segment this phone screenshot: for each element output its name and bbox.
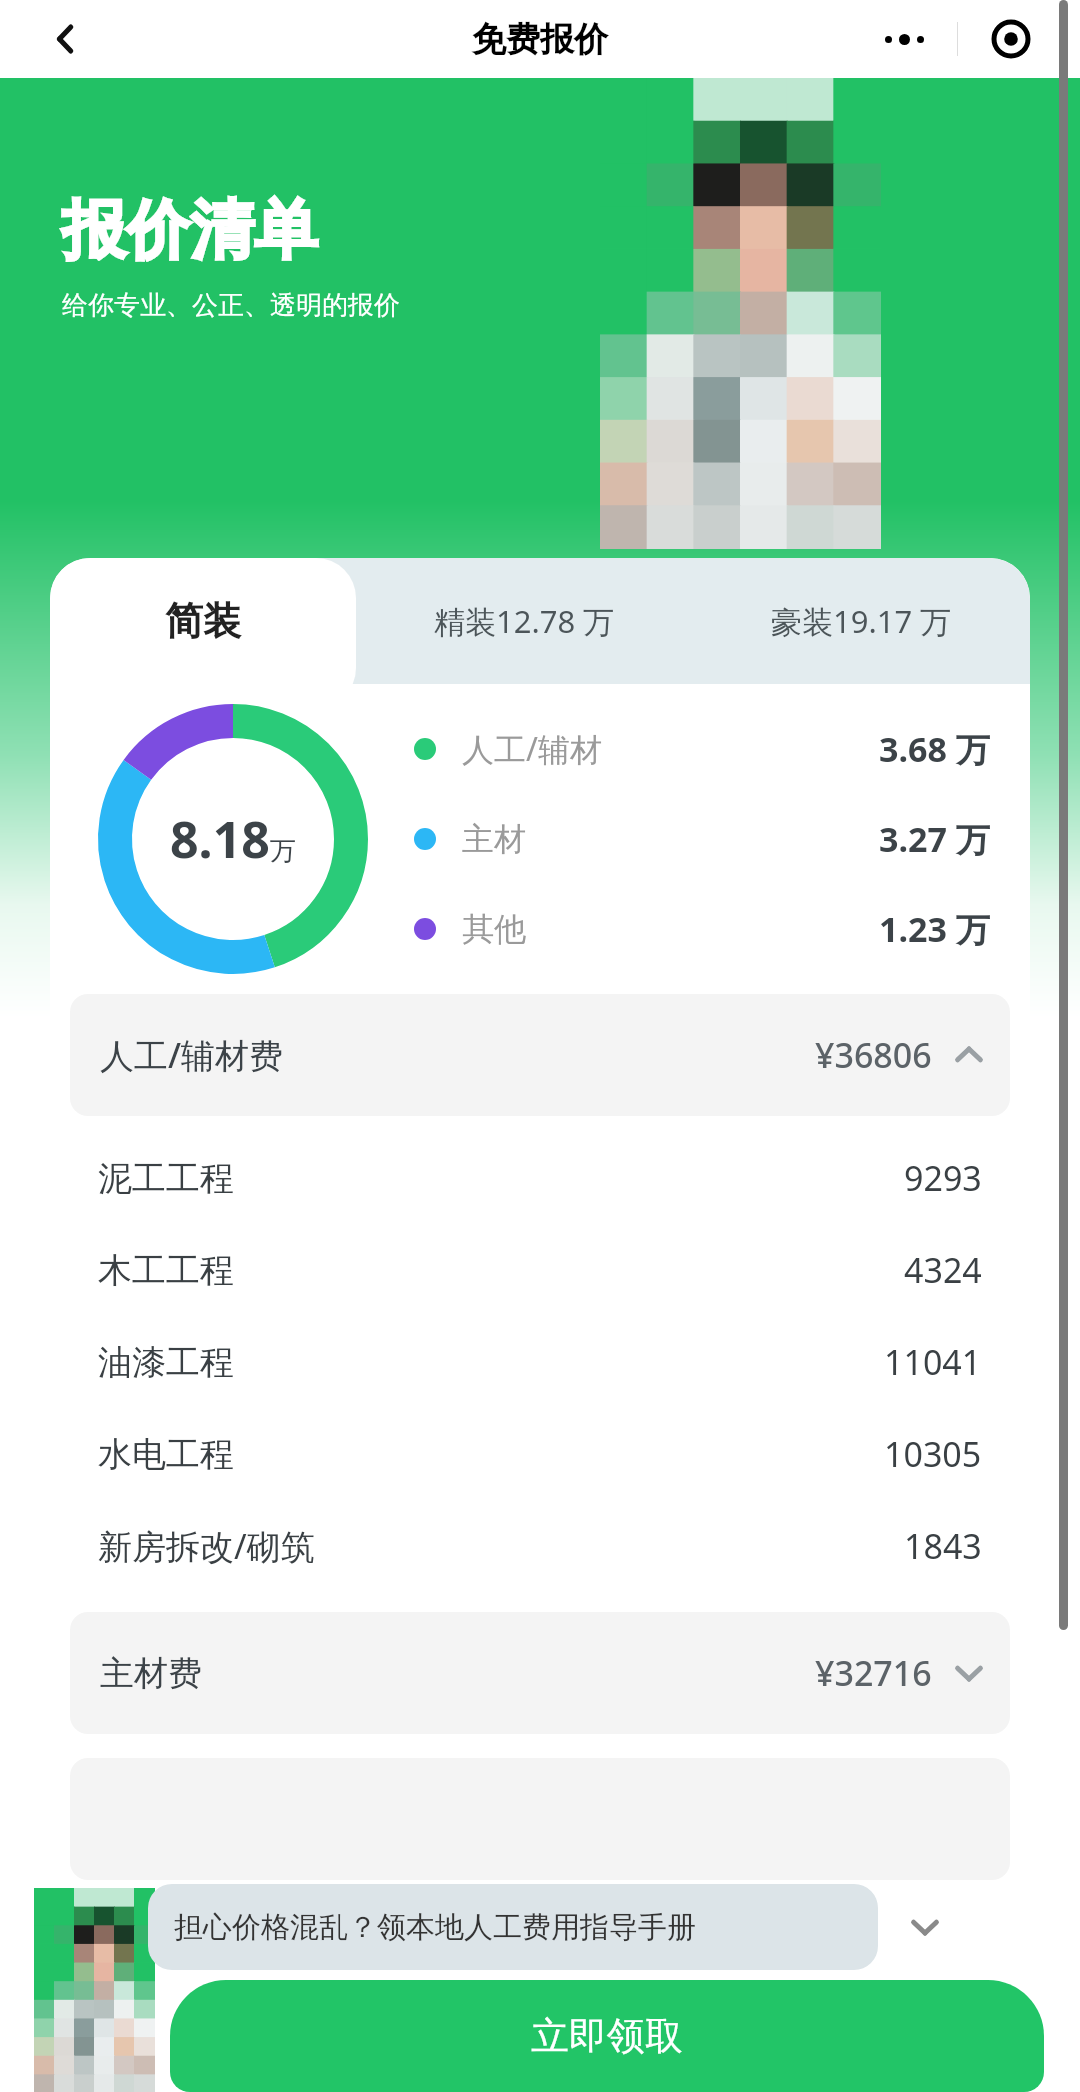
button[interactable]: Back (40, 13, 92, 65)
staticText: 4324 (904, 1247, 982, 1293)
staticText: 油漆工程 (98, 1341, 234, 1384)
button[interactable]: 精装12.78 万 (356, 558, 693, 684)
button[interactable]: 新房拆改/砌筑 (98, 1500, 982, 1592)
button[interactable]: 担心价格混乱？领本地人工费用指导手册 (148, 1884, 878, 1970)
button[interactable]: 立即领取 (170, 1980, 1044, 2092)
button[interactable]: More (852, 9, 957, 69)
staticText: 新房拆改/砌筑 (98, 1523, 315, 1569)
button[interactable]: 泥工工程 (98, 1132, 982, 1224)
button[interactable]: 水电工程 (98, 1408, 982, 1500)
staticText: 豪装19.17 万 (771, 600, 952, 642)
staticText: 万 (270, 835, 296, 868)
staticText: 其他 (462, 909, 526, 949)
staticText: 泥工工程 (98, 1157, 234, 1200)
button[interactable]: 简装 (50, 558, 356, 684)
staticText: 给你专业、公正、透明的报价 (62, 289, 400, 322)
staticText: 10305 (884, 1431, 982, 1477)
staticText: ¥32716 (815, 1650, 932, 1696)
staticText: 免费报价 (472, 18, 608, 61)
staticText: 主材 (462, 819, 526, 859)
staticText: ¥36806 (815, 1032, 932, 1078)
staticText: 1.23 万 (879, 906, 990, 952)
staticText: 主材费 (100, 1652, 202, 1695)
staticText: 11041 (884, 1339, 982, 1385)
button[interactable]: Close (958, 9, 1064, 69)
staticText: 简装 (165, 597, 241, 645)
staticText: 8.18 (170, 805, 270, 873)
staticText: 人工/辅材费 (100, 1032, 284, 1078)
staticText: 报价清单 (62, 190, 318, 271)
staticText: 水电工程 (98, 1433, 234, 1476)
staticText: 木工工程 (98, 1249, 234, 1292)
button[interactable]: 主材费 (70, 1612, 1010, 1734)
staticText: 精装12.78 万 (434, 600, 615, 642)
staticText: 立即领取 (531, 2012, 683, 2060)
button[interactable]: Expand (900, 1902, 950, 1952)
staticText: 1843 (904, 1523, 982, 1569)
button[interactable]: 豪装19.17 万 (693, 558, 1030, 684)
staticText: 3.68 万 (879, 726, 990, 772)
staticText: 3.27 万 (879, 816, 990, 862)
staticText: 人工/辅材 (462, 727, 602, 771)
button[interactable]: 木工工程 (98, 1224, 982, 1316)
staticText: 担心价格混乱？领本地人工费用指导手册 (174, 1909, 696, 1946)
button[interactable]: 油漆工程 (98, 1316, 982, 1408)
staticText: 9293 (904, 1155, 982, 1201)
button[interactable]: 人工/辅材费 (70, 994, 1010, 1116)
